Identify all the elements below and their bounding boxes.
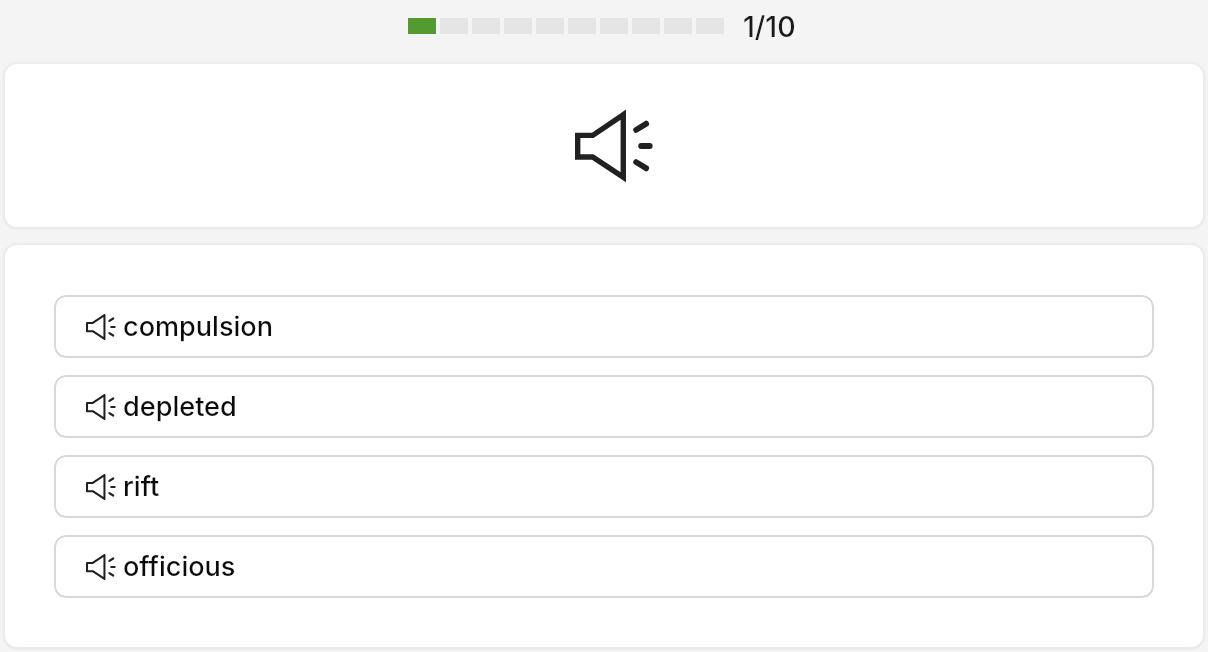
button[interactable]: compulsion	[54, 295, 1154, 358]
button[interactable]: depleted	[54, 375, 1154, 438]
button[interactable]: rift	[54, 455, 1154, 518]
button[interactable]: officious	[54, 535, 1154, 598]
staticText: depleted	[123, 390, 237, 423]
staticText: rift	[123, 470, 160, 503]
staticText: compulsion	[123, 310, 274, 343]
staticText: officious	[123, 550, 236, 583]
button[interactable]: Play the word	[5, 64, 1203, 227]
staticText: 1/10	[743, 9, 796, 43]
